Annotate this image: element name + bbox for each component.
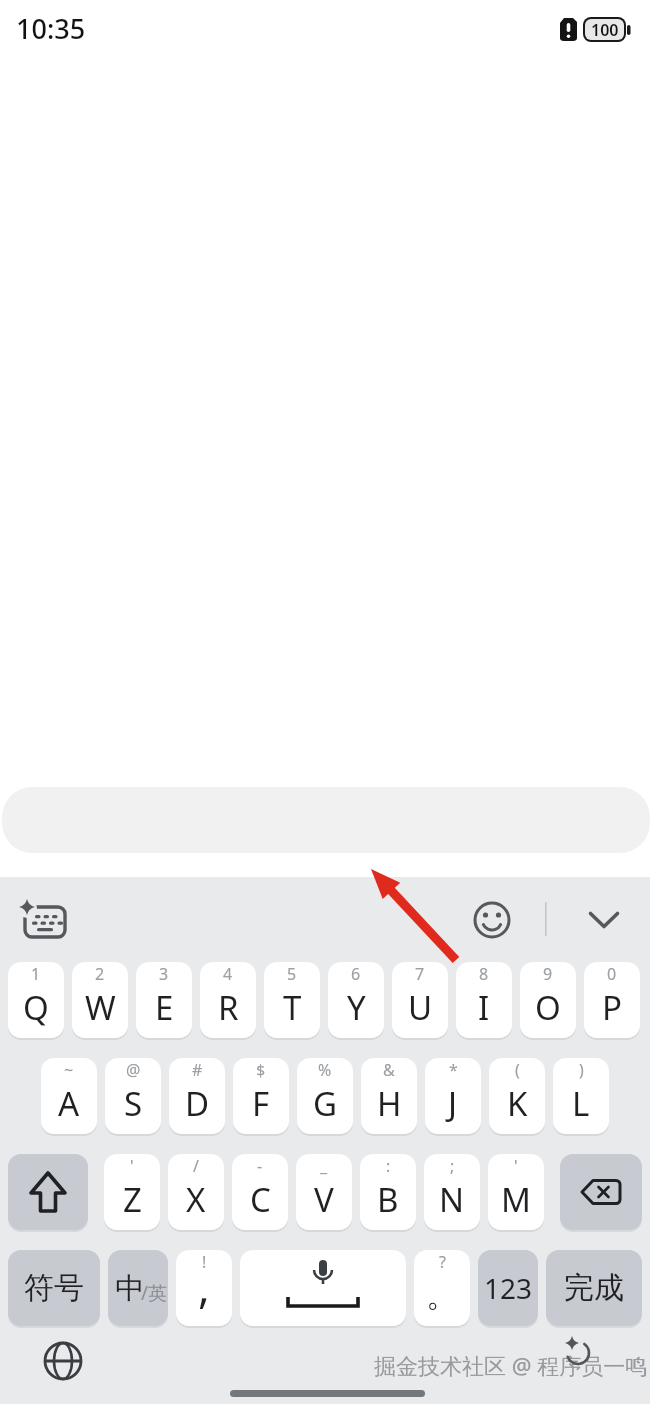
button[interactable]: ! (176, 1250, 232, 1326)
staticText: U (408, 985, 433, 1030)
button[interactable]: 4 (200, 962, 256, 1038)
staticText: ~ (64, 1059, 74, 1081)
staticText: X (186, 1177, 206, 1222)
staticText: K (507, 1081, 528, 1126)
staticText: F (252, 1081, 270, 1126)
staticText: 0 (607, 963, 617, 985)
staticText: 9 (543, 963, 553, 985)
button[interactable]: $ (233, 1058, 289, 1134)
staticText: 3 (159, 963, 169, 985)
staticText: Z (123, 1177, 142, 1222)
button[interactable]: ; (424, 1154, 480, 1230)
staticText: - (257, 1155, 263, 1177)
button[interactable] (240, 1250, 406, 1326)
staticText: S (124, 1081, 143, 1126)
button[interactable]: : (360, 1154, 416, 1230)
button[interactable]: ' (488, 1154, 544, 1230)
staticText: I (478, 985, 490, 1030)
staticText: ! (202, 1251, 207, 1273)
staticText: _ (320, 1155, 328, 1177)
staticText: ) (579, 1059, 584, 1081)
button[interactable]: 1 (8, 962, 64, 1038)
button[interactable]: ~ (41, 1058, 97, 1134)
staticText: 2 (95, 963, 105, 985)
staticText: Q (23, 985, 49, 1030)
staticText: / (193, 1155, 199, 1177)
button[interactable]: ? (414, 1250, 470, 1326)
button[interactable]: 123 (478, 1250, 538, 1326)
staticText: 中 (115, 1270, 144, 1307)
staticText: 1 (31, 963, 41, 985)
button[interactable]: 6 (328, 962, 384, 1038)
button[interactable]: 3 (136, 962, 192, 1038)
button[interactable]: ) (553, 1058, 609, 1134)
button[interactable]: _ (296, 1154, 352, 1230)
staticText: # (192, 1059, 203, 1081)
staticText: 123 (484, 1269, 533, 1307)
button[interactable]: @ (105, 1058, 161, 1134)
button[interactable]: 中 (108, 1250, 168, 1326)
staticText: ; (450, 1155, 455, 1177)
staticText: 符号 (24, 1269, 84, 1307)
staticText: 6 (351, 963, 361, 985)
button[interactable]: ( (489, 1058, 545, 1134)
staticText: L (572, 1081, 590, 1126)
staticText: 。 (426, 1275, 458, 1315)
staticText: C (250, 1177, 271, 1222)
button[interactable]: / (168, 1154, 224, 1230)
staticText: ' (130, 1155, 134, 1177)
button[interactable] (468, 894, 516, 946)
staticText: O (535, 985, 561, 1030)
staticText: W (85, 985, 116, 1030)
button[interactable]: 2 (72, 962, 128, 1038)
staticText: G (313, 1081, 338, 1126)
staticText: ( (515, 1059, 520, 1081)
staticText: ' (514, 1155, 518, 1177)
staticText: $ (256, 1059, 266, 1081)
button[interactable] (560, 1154, 642, 1230)
staticText: 100 (591, 19, 619, 40)
staticText: B (377, 1177, 399, 1222)
button[interactable]: # (169, 1058, 225, 1134)
button[interactable]: 0 (584, 962, 640, 1038)
button[interactable]: 5 (264, 962, 320, 1038)
button[interactable]: 符号 (8, 1250, 100, 1326)
staticText: /英 (141, 1280, 168, 1306)
staticText: E (155, 985, 174, 1030)
button[interactable]: 7 (392, 962, 448, 1038)
button[interactable]: - (232, 1154, 288, 1230)
button[interactable]: & (361, 1058, 417, 1134)
button[interactable] (16, 894, 72, 946)
staticText: 完成 (564, 1269, 624, 1307)
staticText: D (185, 1081, 210, 1126)
staticText: & (383, 1059, 395, 1081)
staticText: 4 (223, 963, 233, 985)
button[interactable] (580, 894, 628, 946)
button[interactable]: ' (104, 1154, 160, 1230)
button[interactable]: * (425, 1058, 481, 1134)
staticText: 掘金技术社区 @ 程序员一鸣 (374, 1350, 648, 1380)
staticText: N (439, 1177, 465, 1222)
button[interactable]: 完成 (546, 1250, 642, 1326)
staticText: V (314, 1177, 334, 1222)
button[interactable] (8, 1154, 88, 1230)
staticText: : (386, 1155, 391, 1177)
button[interactable]: % (297, 1058, 353, 1134)
staticText: 7 (415, 963, 425, 985)
staticText: J (448, 1081, 458, 1126)
staticText: , (198, 1256, 210, 1316)
staticText: 8 (479, 963, 489, 985)
button[interactable]: 8 (456, 962, 512, 1038)
staticText: H (377, 1081, 402, 1126)
button[interactable] (38, 1336, 88, 1386)
staticText: ? (439, 1251, 446, 1273)
staticText: 5 (287, 963, 297, 985)
staticText: 10:35 (16, 10, 86, 47)
button[interactable]: 9 (520, 962, 576, 1038)
staticText: Y (347, 985, 366, 1030)
staticText: M (501, 1177, 531, 1222)
staticText: A (58, 1081, 80, 1126)
staticText: % (318, 1059, 332, 1081)
staticText: @ (126, 1059, 141, 1081)
